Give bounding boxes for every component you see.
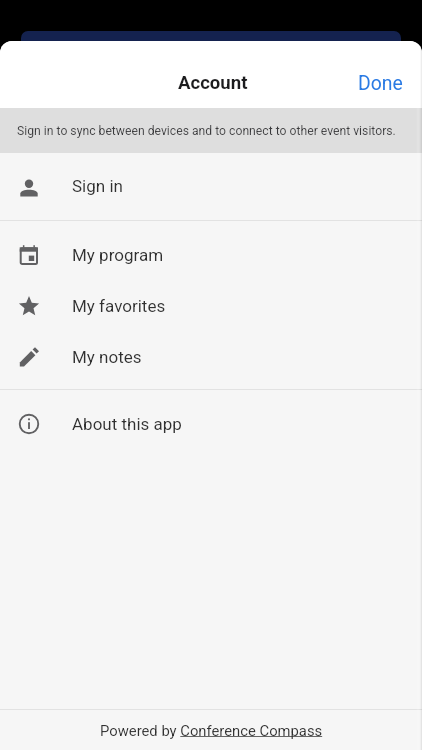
staticText: My notes	[72, 347, 142, 367]
staticText: Account	[178, 72, 248, 94]
staticText: Sign in to sync between devices and to c…	[17, 124, 396, 138]
button[interactable]: Sign in	[0, 163, 422, 214]
staticText: About this app	[72, 414, 182, 434]
staticText: Sign in	[72, 176, 123, 196]
button[interactable]: My notes	[0, 334, 422, 385]
button[interactable]: My program	[0, 232, 422, 283]
staticText: My program	[72, 245, 164, 265]
button[interactable]: Powered by Conference Compass	[0, 710, 422, 750]
button[interactable]: About this app	[0, 401, 422, 452]
staticText: Powered by Conference Compass	[100, 722, 323, 739]
staticText: My favorites	[72, 296, 166, 316]
button[interactable]: Done	[338, 60, 422, 107]
button[interactable]: My favorites	[0, 283, 422, 334]
staticText: Done	[358, 72, 403, 95]
